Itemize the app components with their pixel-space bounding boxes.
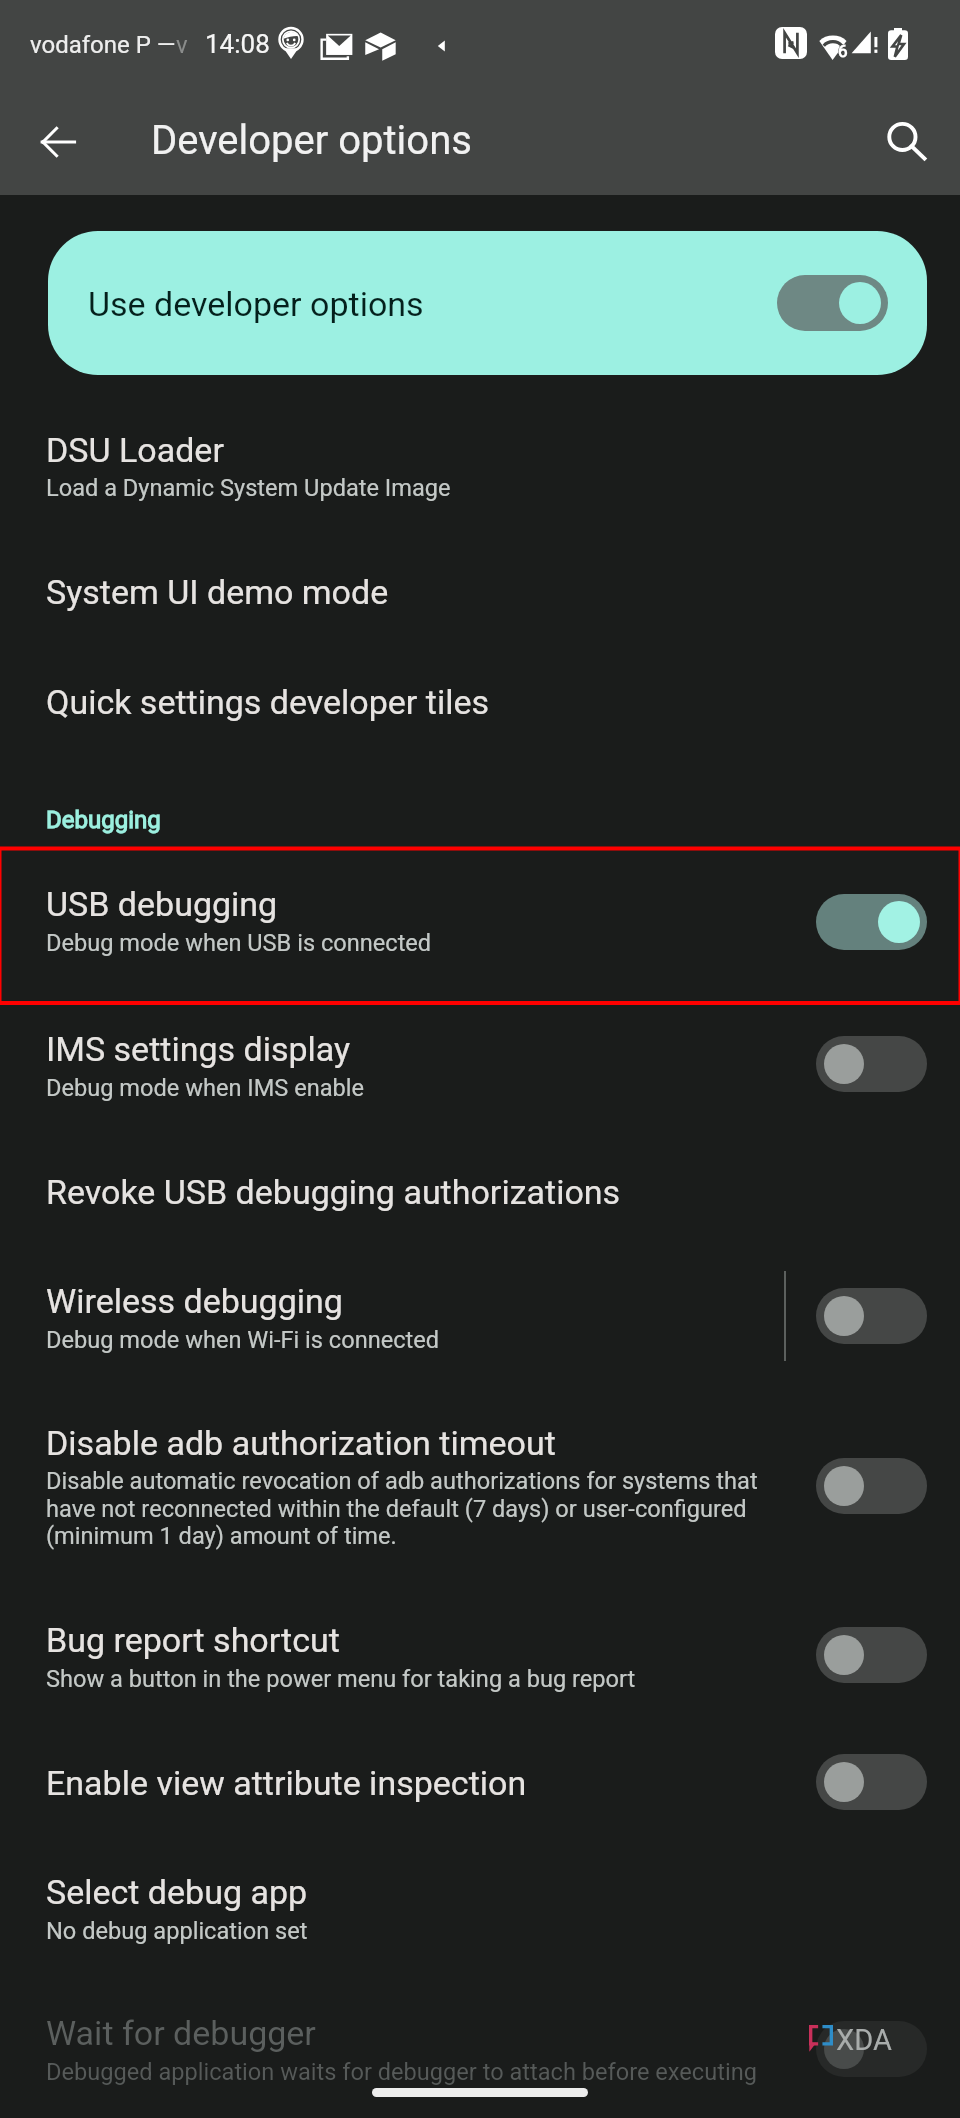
staticText: Disable adb authorization timeout xyxy=(46,1423,556,1463)
button[interactable]: Quick settings developer tiles xyxy=(0,660,960,738)
button[interactable]: Toggle on xyxy=(816,894,927,950)
staticText: System UI demo mode xyxy=(46,572,389,612)
staticText: Select debug app xyxy=(46,1872,308,1912)
staticText: Disable automatic revocation of adb auth… xyxy=(46,1467,758,1495)
button[interactable]: System UI demo mode xyxy=(0,550,960,628)
button[interactable]: USB debugging xyxy=(0,862,960,947)
staticText: Load a Dynamic System Update Image xyxy=(46,474,451,502)
staticText: USB debugging xyxy=(46,884,278,924)
staticText: Show a button in the power menu for taki… xyxy=(46,1665,636,1693)
button[interactable]: Toggle off xyxy=(816,1288,927,1344)
staticText: IMS settings display xyxy=(46,1029,351,1069)
staticText: No debug application set xyxy=(46,1917,308,1945)
staticText: vo xyxy=(176,31,198,59)
staticText: Revoke USB debugging authorizations xyxy=(46,1172,621,1212)
staticText: have not reconnected within the default … xyxy=(46,1495,747,1523)
staticText: Enable view attribute inspection xyxy=(46,1763,527,1803)
button[interactable]: Toggle off xyxy=(816,1754,927,1810)
staticText: Debugging xyxy=(46,806,161,834)
button[interactable]: Back xyxy=(26,110,90,174)
button[interactable]: Toggle off xyxy=(816,1458,927,1514)
button[interactable]: Disable adb authorization timeout xyxy=(0,1401,960,1540)
button[interactable]: Wireless debugging xyxy=(0,1259,960,1344)
button[interactable]: Select debug app xyxy=(0,1850,960,1935)
staticText: XDA xyxy=(836,2023,892,2057)
button[interactable]: Toggle off xyxy=(816,1627,927,1683)
button[interactable]: Wait for debugger xyxy=(0,1991,960,2066)
staticText: Use developer options xyxy=(88,284,424,324)
button[interactable]: Bug report shortcut xyxy=(0,1598,960,1683)
button[interactable]: Use developer options xyxy=(48,231,927,375)
staticText: Quick settings developer tiles xyxy=(46,682,490,722)
staticText: 6 xyxy=(838,41,848,61)
staticText: Debugged application waits for debugger … xyxy=(46,2058,757,2086)
staticText: Wireless debugging xyxy=(46,1281,343,1321)
button[interactable]: Enable view attribute inspection xyxy=(0,1741,960,1819)
staticText: Bug report shortcut xyxy=(46,1620,340,1660)
button[interactable]: IMS settings display xyxy=(0,1007,960,1092)
button[interactable]: Developer options xyxy=(151,117,472,164)
staticText: Debug mode when Wi-Fi is connected xyxy=(46,1326,440,1354)
staticText: Debug mode when USB is connected xyxy=(46,929,432,957)
staticText: 14:08 xyxy=(205,29,270,59)
button[interactable]: Revoke USB debugging authorizations xyxy=(0,1150,960,1228)
staticText: (minimum 1 day) amount of time. xyxy=(46,1522,397,1550)
staticText: vodafone P — xyxy=(30,31,176,59)
staticText: Developer options xyxy=(151,117,472,164)
staticText: DSU Loader xyxy=(46,430,224,470)
button[interactable]: Toggle disabled xyxy=(816,2021,927,2077)
button[interactable]: DSU Loader xyxy=(0,408,960,492)
button[interactable]: Toggle off xyxy=(816,1036,927,1092)
staticText: Wait for debugger xyxy=(46,2013,316,2053)
button[interactable]: Search xyxy=(875,110,939,174)
button[interactable]: Debugging xyxy=(46,806,161,834)
staticText: Debug mode when IMS enable xyxy=(46,1074,365,1102)
